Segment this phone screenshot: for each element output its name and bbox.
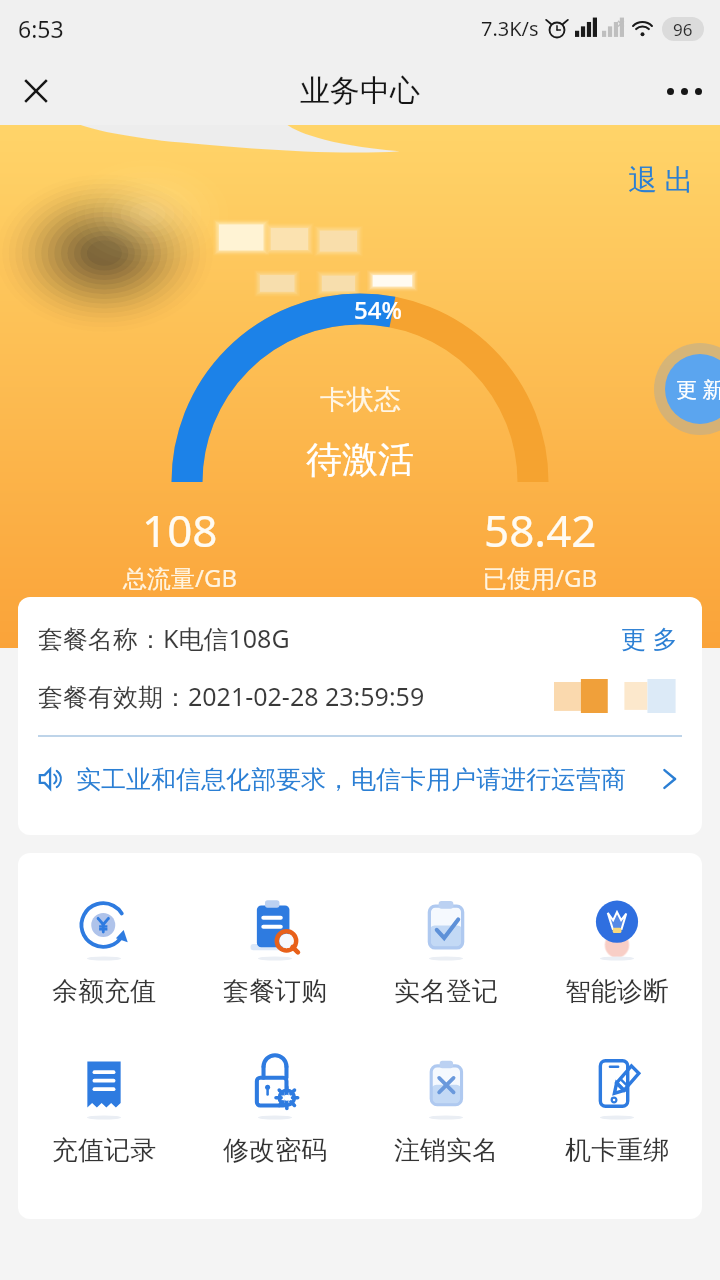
button[interactable]: 充值记录 bbox=[18, 1046, 189, 1171]
staticText: 58.42 bbox=[484, 500, 597, 560]
staticText: 余额充值 bbox=[52, 975, 156, 1008]
staticText: 已使用/GB bbox=[483, 561, 597, 594]
staticText: 套餐名称：K电信108G bbox=[38, 621, 290, 655]
staticText: 实名登记 bbox=[394, 975, 498, 1008]
button[interactable]: 更 多 bbox=[617, 617, 682, 659]
staticText: 总流量/GB bbox=[123, 561, 237, 594]
staticText: 更 多 bbox=[621, 621, 678, 655]
button[interactable]: More options bbox=[656, 63, 712, 119]
staticText: 更 新 bbox=[676, 375, 720, 404]
staticText: 注销实名 bbox=[394, 1134, 498, 1167]
staticText: 54% bbox=[354, 293, 402, 326]
staticText: 卡状态 bbox=[320, 383, 401, 417]
staticText: 套餐订购 bbox=[223, 975, 327, 1008]
staticText: 108 bbox=[142, 500, 218, 560]
staticText: 96 bbox=[673, 18, 693, 41]
button[interactable]: 注销实名 bbox=[360, 1046, 531, 1171]
button[interactable]: 修改密码 bbox=[189, 1046, 360, 1171]
button[interactable]: 实名登记 bbox=[360, 887, 531, 1012]
button[interactable]: 退 出 bbox=[620, 153, 702, 205]
staticText: 业务中心 bbox=[300, 72, 420, 110]
staticText: 待激活 bbox=[306, 437, 414, 482]
staticText: 充值记录 bbox=[52, 1134, 156, 1167]
button[interactable]: Refresh bbox=[654, 343, 720, 435]
staticText: 机卡重绑 bbox=[565, 1134, 669, 1167]
staticText: 智能诊断 bbox=[565, 975, 669, 1008]
button[interactable]: 机卡重绑 bbox=[531, 1046, 702, 1171]
staticText: 6:53 bbox=[18, 13, 64, 44]
staticText: 修改密码 bbox=[223, 1134, 327, 1167]
button[interactable]: 套餐订购 bbox=[189, 887, 360, 1012]
button[interactable]: 实工业和信息化部要求，电信卡用户请进行运营商 bbox=[18, 737, 702, 821]
button[interactable]: Close bbox=[8, 63, 64, 119]
button[interactable]: 余额充值 bbox=[18, 887, 189, 1012]
staticText: 退 出 bbox=[628, 159, 694, 199]
staticText: 7.3K/s bbox=[481, 15, 539, 42]
staticText: 套餐有效期：2021-02-28 23:59:59 bbox=[38, 679, 425, 713]
staticText: 实工业和信息化部要求，电信卡用户请进行运营商 bbox=[76, 764, 652, 795]
button[interactable]: 智能诊断 bbox=[531, 887, 702, 1012]
